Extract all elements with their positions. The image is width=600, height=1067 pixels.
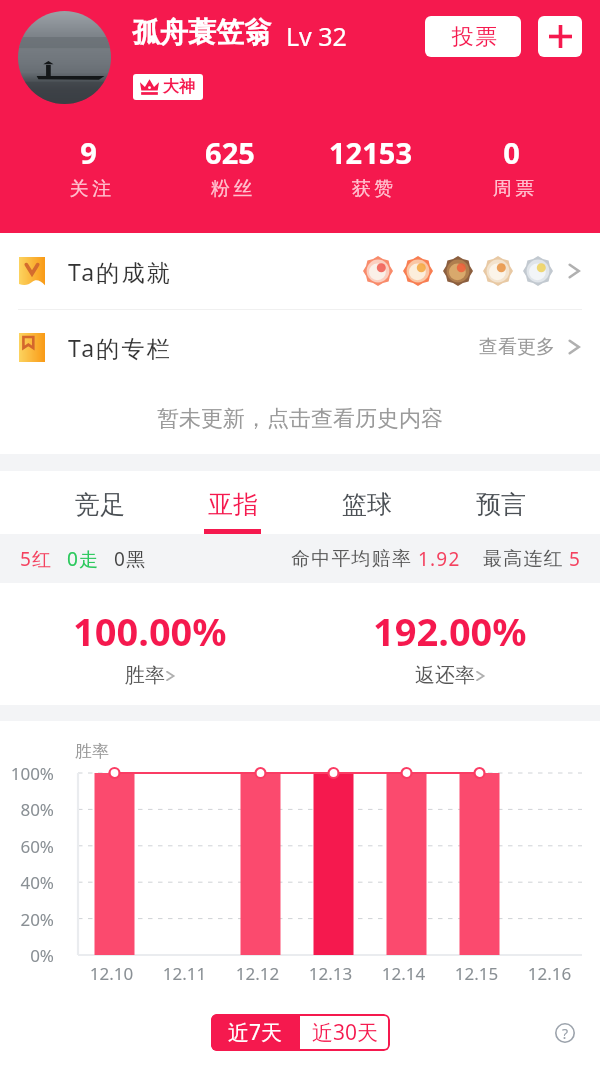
- button[interactable]: 暂未更新，点击查看历史内容: [0, 384, 600, 454]
- staticText: 12.11: [148, 962, 221, 985]
- button[interactable]: Help: [548, 1016, 582, 1050]
- staticText: 大神: [163, 77, 195, 97]
- staticText: 60%: [0, 835, 54, 858]
- staticText: 获赞: [350, 177, 395, 201]
- staticText: 5红: [20, 546, 53, 572]
- staticText: 0: [503, 133, 520, 172]
- staticText: 暂未更新，点击查看历史内容: [157, 405, 443, 433]
- staticText: 100%: [0, 762, 54, 785]
- button[interactable]: 大神: [140, 77, 195, 97]
- button[interactable]: Avatar: [18, 11, 111, 104]
- button[interactable]: Ta的成就: [0, 233, 600, 309]
- button[interactable]: 竞足: [33, 471, 166, 534]
- button[interactable]: 亚指: [166, 471, 299, 534]
- button[interactable]: 0: [441, 133, 582, 201]
- staticText: 192.00%: [373, 605, 527, 657]
- staticText: 12153: [329, 133, 412, 172]
- staticText: 预言: [476, 489, 526, 520]
- staticText: 近7天: [228, 1018, 283, 1047]
- staticText: ?: [562, 1024, 569, 1043]
- staticText: 投票: [451, 23, 498, 51]
- staticText: 胜率: [75, 741, 109, 762]
- staticText: 40%: [0, 871, 54, 894]
- button[interactable]: Ta的专栏: [0, 310, 600, 384]
- staticText: 12.15: [440, 962, 513, 985]
- staticText: 查看更多: [479, 335, 555, 359]
- staticText: 最高连红: [483, 547, 564, 571]
- staticText: 孤舟蓑笠翁: [132, 15, 272, 50]
- staticText: 9: [80, 133, 97, 172]
- staticText: 近30天: [312, 1018, 379, 1047]
- staticText: 80%: [0, 798, 54, 821]
- button[interactable]: 625: [159, 133, 300, 201]
- staticText: 返还率: [415, 663, 475, 688]
- staticText: 竞足: [75, 489, 125, 520]
- staticText: 0黑: [114, 546, 147, 572]
- button[interactable]: Follow: [538, 16, 582, 57]
- staticText: 亚指: [208, 489, 258, 520]
- button[interactable]: 预言: [433, 471, 567, 534]
- button[interactable]: 投票: [425, 16, 521, 57]
- staticText: 12.16: [513, 962, 586, 985]
- staticText: 篮球: [342, 489, 392, 520]
- staticText: 胜率: [125, 663, 165, 688]
- button[interactable]: 100.00%: [0, 583, 300, 705]
- staticText: 1.92: [418, 546, 461, 572]
- staticText: 12.13: [294, 962, 367, 985]
- staticText: 625: [205, 133, 255, 172]
- button[interactable]: 9: [18, 133, 159, 201]
- staticText: 0%: [0, 944, 54, 967]
- staticText: 关注: [68, 177, 113, 201]
- staticText: 12.12: [221, 962, 294, 985]
- button[interactable]: 192.00%: [300, 583, 600, 705]
- button[interactable]: 近30天: [300, 1014, 390, 1051]
- staticText: 粉丝: [209, 177, 254, 201]
- button[interactable]: 近7天: [211, 1014, 300, 1051]
- staticText: Ta的专栏: [68, 332, 172, 363]
- staticText: 命中平均赔率: [291, 547, 413, 571]
- staticText: 12.10: [75, 962, 148, 985]
- staticText: 100.00%: [73, 605, 227, 657]
- button[interactable]: 12153: [300, 133, 441, 201]
- staticText: 周票: [491, 177, 536, 201]
- staticText: 20%: [0, 908, 54, 931]
- staticText: Ta的成就: [68, 256, 172, 287]
- staticText: 5: [569, 546, 582, 572]
- staticText: 12.14: [367, 962, 440, 985]
- button[interactable]: 篮球: [299, 471, 433, 534]
- staticText: Lv 32: [286, 19, 347, 53]
- staticText: 0走: [67, 546, 100, 572]
